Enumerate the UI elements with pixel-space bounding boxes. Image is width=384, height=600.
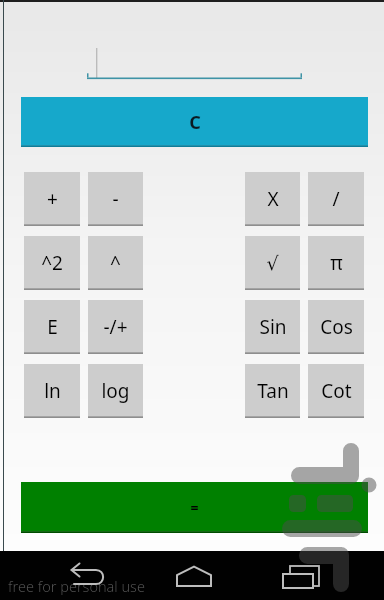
button[interactable]: Home <box>174 565 218 591</box>
staticText: E <box>47 314 58 340</box>
staticText: X <box>267 186 279 212</box>
staticText: Tan <box>257 378 289 404</box>
button[interactable]: π <box>308 236 364 290</box>
button[interactable]: Sin <box>245 300 300 354</box>
button[interactable]: E <box>24 300 80 354</box>
staticText: Cos <box>320 314 353 340</box>
button[interactable]: Cot <box>308 364 364 418</box>
staticText: ln <box>44 378 61 404</box>
staticText: π <box>330 250 343 276</box>
button[interactable]: = <box>21 482 368 533</box>
button[interactable]: Tan <box>245 364 300 418</box>
staticText: / <box>332 186 340 212</box>
button[interactable]: Cos <box>308 300 364 354</box>
staticText: Cot <box>321 378 352 404</box>
button[interactable]: ln <box>24 364 80 418</box>
button[interactable]: / <box>308 172 364 226</box>
staticText: -/+ <box>103 314 128 340</box>
button[interactable]: - <box>88 172 143 226</box>
staticText: - <box>112 186 119 212</box>
button[interactable]: log <box>88 364 143 418</box>
staticText: ^2 <box>41 250 63 276</box>
staticText: ^ <box>110 250 121 276</box>
staticText: √ <box>266 252 279 274</box>
staticText: C <box>189 110 201 135</box>
button[interactable]: C <box>21 97 368 147</box>
staticText: = <box>190 498 199 517</box>
button[interactable]: X <box>245 172 300 226</box>
staticText: + <box>47 186 58 212</box>
button[interactable]: ^2 <box>24 236 80 290</box>
staticText: free for personal use <box>8 576 145 596</box>
button[interactable]: -/+ <box>88 300 143 354</box>
button[interactable]: + <box>24 172 80 226</box>
button[interactable]: Back <box>68 565 112 591</box>
staticText: log <box>101 378 130 404</box>
staticText: Sin <box>259 314 287 340</box>
button[interactable]: ^ <box>88 236 143 290</box>
button[interactable]: Recents <box>278 564 322 590</box>
button[interactable]: √ <box>245 236 300 290</box>
